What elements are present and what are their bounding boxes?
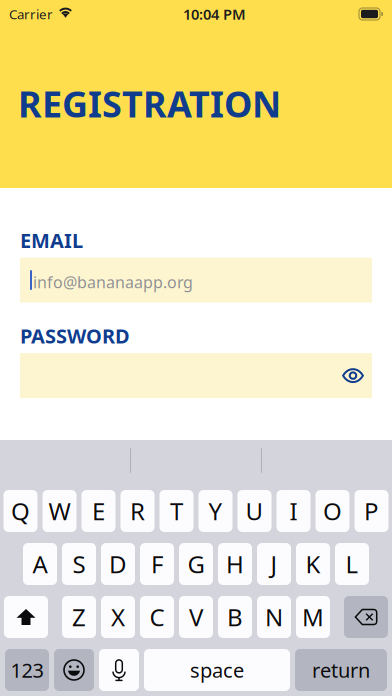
button[interactable]: I	[276, 490, 310, 532]
staticText: W	[48, 495, 70, 527]
staticText: X	[111, 601, 125, 633]
button[interactable]: P	[354, 490, 388, 532]
staticText: G	[187, 548, 204, 580]
staticText: Carrier	[9, 5, 53, 23]
staticText: N	[265, 601, 283, 633]
staticText: D	[109, 548, 127, 580]
staticText: M	[302, 601, 324, 633]
staticText: A	[32, 548, 47, 580]
staticText: Z	[72, 601, 86, 633]
staticText: L	[345, 548, 358, 580]
staticText: F	[151, 548, 163, 580]
staticText: B	[227, 601, 243, 633]
button[interactable]: R	[120, 490, 154, 532]
button[interactable]: U	[237, 490, 271, 532]
staticText: Y	[208, 495, 222, 527]
button[interactable]: Dictation	[99, 649, 139, 691]
staticText: REGISTRATION	[18, 80, 281, 127]
staticText: 123	[10, 657, 43, 683]
button[interactable]: Delete	[344, 596, 388, 638]
staticText: U	[245, 495, 263, 527]
button[interactable]: Emoji	[54, 649, 94, 691]
staticText: R	[130, 495, 145, 527]
staticText: I	[289, 495, 297, 527]
button[interactable]: return	[295, 649, 387, 691]
staticText: info@bananaapp.org	[33, 271, 193, 293]
button[interactable]: Y	[198, 490, 232, 532]
staticText: K	[305, 548, 320, 580]
button[interactable]: G	[179, 543, 213, 585]
button[interactable]: Show password	[336, 359, 370, 393]
button[interactable]: 123	[5, 649, 49, 691]
staticText: O	[323, 495, 342, 527]
staticText: E	[92, 495, 105, 527]
button[interactable]: E	[81, 490, 115, 532]
staticText: J	[270, 548, 277, 580]
button[interactable]: K	[296, 543, 330, 585]
staticText: V	[189, 601, 203, 633]
staticText: 10:04 PM	[183, 4, 246, 24]
button[interactable]: T	[159, 490, 193, 532]
button[interactable]: Q	[3, 490, 37, 532]
staticText: Q	[11, 495, 30, 527]
staticText: EMAIL	[20, 227, 83, 254]
button[interactable]: J	[257, 543, 291, 585]
button[interactable]: B	[218, 596, 252, 638]
button[interactable]: L	[335, 543, 369, 585]
button[interactable]: space	[144, 649, 290, 691]
staticText: S	[72, 548, 85, 580]
staticText: C	[149, 601, 164, 633]
button[interactable]: N	[257, 596, 291, 638]
staticText: T	[170, 495, 183, 527]
button[interactable]: A	[23, 543, 57, 585]
staticText: return	[312, 657, 370, 683]
button[interactable]: S	[62, 543, 96, 585]
button[interactable]: W	[42, 490, 76, 532]
button[interactable]: H	[218, 543, 252, 585]
staticText: H	[226, 548, 244, 580]
button[interactable]: X	[101, 596, 135, 638]
staticText: P	[364, 495, 379, 527]
button[interactable]: F	[140, 543, 174, 585]
button[interactable]: Z	[62, 596, 96, 638]
button[interactable]: C	[140, 596, 174, 638]
button[interactable]: D	[101, 543, 135, 585]
button[interactable]: Shift	[4, 596, 48, 638]
button[interactable]: M	[296, 596, 330, 638]
button[interactable]: V	[179, 596, 213, 638]
button[interactable]: O	[315, 490, 349, 532]
staticText: PASSWORD	[20, 323, 130, 349]
staticText: space	[190, 657, 244, 683]
